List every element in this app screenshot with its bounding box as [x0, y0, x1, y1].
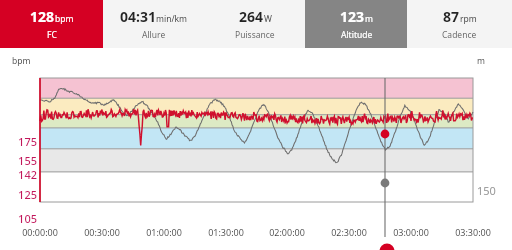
staticText: 02:00:00 [261, 226, 313, 238]
staticText: 00:00:00 [14, 226, 66, 238]
staticText: Puissance [235, 29, 275, 41]
button[interactable] [0, 48, 512, 222]
staticText: 125 [7, 187, 37, 202]
staticText: 150 [477, 183, 496, 198]
staticText: 155 [7, 153, 37, 168]
staticText: Altitude [341, 29, 373, 41]
staticText: min/km [156, 13, 188, 25]
button[interactable]: 87 [407, 0, 512, 48]
staticText: 02:30:00 [323, 226, 375, 238]
staticText: 01:30:00 [200, 226, 252, 238]
staticText: Allure [142, 29, 166, 41]
staticText: W [264, 13, 272, 25]
staticText: 01:00:00 [138, 226, 190, 238]
staticText: 128 [30, 7, 55, 26]
staticText: 04:31 [120, 7, 156, 26]
staticText: bpm [12, 55, 31, 67]
staticText: 00:30:00 [76, 226, 128, 238]
staticText: 03:30:00 [447, 226, 499, 238]
staticText: 175 [7, 134, 37, 149]
staticText: rpm [460, 13, 477, 25]
staticText: m [477, 55, 485, 67]
staticText: 123 [340, 7, 365, 26]
staticText: 264 [239, 7, 264, 26]
other: Position indicator [0, 0, 512, 250]
staticText: FC [47, 29, 57, 41]
button[interactable]: 128 [0, 0, 103, 48]
button[interactable]: 04:31 [103, 0, 204, 48]
button[interactable]: 123 [305, 0, 407, 48]
staticText: 142 [7, 167, 37, 182]
staticText: 105 [7, 211, 37, 226]
staticText: bpm [55, 13, 74, 25]
staticText: 03:00:00 [385, 226, 437, 238]
button[interactable]: 264 [204, 0, 305, 48]
staticText: 87 [443, 7, 460, 26]
staticText: m [365, 13, 373, 25]
staticText: Cadence [442, 29, 477, 41]
